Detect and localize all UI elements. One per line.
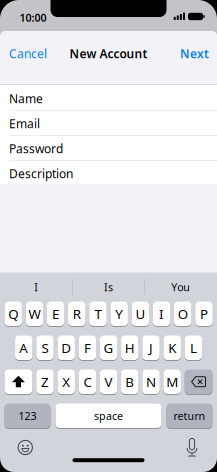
staticText: F xyxy=(84,339,91,357)
button[interactable]: G xyxy=(100,335,117,360)
staticText: B xyxy=(125,373,134,391)
staticText: Y xyxy=(115,305,123,323)
button[interactable]: U xyxy=(132,301,149,326)
button[interactable]: Shift xyxy=(4,369,32,394)
button[interactable]: I xyxy=(153,301,170,326)
button[interactable]: Email xyxy=(9,111,208,135)
staticText: 123 xyxy=(18,409,36,423)
staticText: space xyxy=(94,409,123,423)
button[interactable]: C xyxy=(79,369,96,394)
button[interactable]: E xyxy=(47,301,64,326)
button[interactable]: Q xyxy=(4,301,22,326)
staticText: E xyxy=(52,305,59,323)
staticText: I xyxy=(159,305,164,323)
button[interactable]: Password xyxy=(9,136,208,160)
staticText: New Account xyxy=(69,45,147,61)
button[interactable]: I xyxy=(6,276,66,298)
button[interactable]: P xyxy=(195,301,213,326)
staticText: 10:00 xyxy=(19,10,46,25)
staticText: Is xyxy=(104,280,113,294)
button[interactable]: You xyxy=(151,276,211,298)
staticText: Q xyxy=(8,305,18,323)
staticText: U xyxy=(135,305,145,323)
button[interactable]: N xyxy=(142,369,160,394)
staticText: Next xyxy=(180,45,209,61)
staticText: S xyxy=(41,339,48,357)
staticText: You xyxy=(171,280,190,294)
button[interactable]: J xyxy=(142,335,160,360)
staticText: V xyxy=(105,373,113,391)
button[interactable]: Next xyxy=(169,43,209,63)
staticText: P xyxy=(200,305,208,323)
staticText: T xyxy=(94,305,101,323)
button[interactable]: space xyxy=(55,403,161,428)
staticText: Cancel xyxy=(9,45,47,61)
staticText: H xyxy=(125,339,135,357)
staticText: Name xyxy=(9,90,43,106)
button[interactable]: 123 xyxy=(4,403,50,428)
button[interactable]: T xyxy=(89,301,107,326)
staticText: G xyxy=(104,339,114,357)
staticText: O xyxy=(178,305,188,323)
button[interactable]: B xyxy=(121,369,138,394)
button[interactable]: F xyxy=(79,335,96,360)
staticText: W xyxy=(28,305,40,323)
button[interactable]: W xyxy=(26,301,43,326)
button[interactable]: Y xyxy=(110,301,128,326)
button[interactable]: D xyxy=(57,335,75,360)
button[interactable]: Name xyxy=(9,86,208,110)
staticText: Description xyxy=(9,165,73,181)
button[interactable]: Description xyxy=(9,161,208,185)
button[interactable]: return xyxy=(166,403,212,428)
staticText: N xyxy=(146,373,156,391)
button[interactable]: Emoji xyxy=(17,440,33,455)
staticText: return xyxy=(173,409,205,423)
button[interactable]: Delete xyxy=(185,369,212,394)
staticText: C xyxy=(83,373,91,391)
button[interactable]: V xyxy=(100,369,117,394)
button[interactable]: A xyxy=(15,335,32,360)
button[interactable]: S xyxy=(36,335,54,360)
button[interactable]: Is xyxy=(78,276,138,298)
button[interactable]: Z xyxy=(36,369,54,394)
staticText: X xyxy=(62,373,70,391)
button[interactable]: Dictate xyxy=(186,438,197,457)
button[interactable]: L xyxy=(185,335,202,360)
staticText: Password xyxy=(9,140,63,156)
staticText: I xyxy=(34,280,38,294)
staticText: L xyxy=(190,339,197,357)
staticText: K xyxy=(168,339,176,357)
staticText: A xyxy=(19,339,28,357)
staticText: J xyxy=(149,339,153,357)
staticText: R xyxy=(73,305,81,323)
button[interactable]: K xyxy=(163,335,181,360)
staticText: M xyxy=(166,373,178,391)
button[interactable]: O xyxy=(174,301,191,326)
button[interactable]: Cancel xyxy=(9,43,59,63)
button[interactable]: M xyxy=(163,369,181,394)
button[interactable]: R xyxy=(68,301,85,326)
staticText: D xyxy=(61,339,71,357)
button[interactable]: H xyxy=(121,335,138,360)
staticText: Email xyxy=(9,115,40,131)
button[interactable]: X xyxy=(57,369,75,394)
staticText: Z xyxy=(41,373,49,391)
